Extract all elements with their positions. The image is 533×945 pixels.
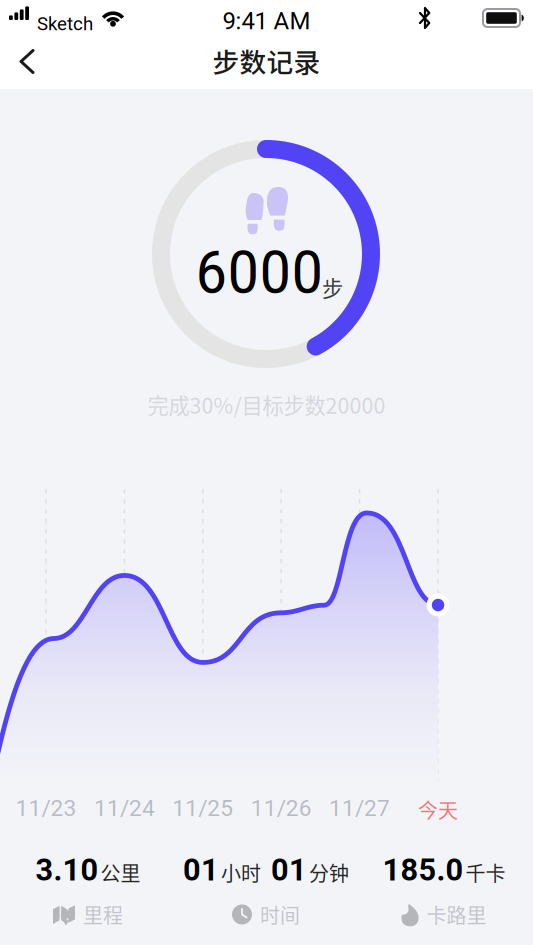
staticText: 11/25 <box>172 795 233 822</box>
staticText: 01 <box>183 852 219 888</box>
staticText: 11/24 <box>94 795 155 822</box>
staticText: 时间 <box>260 900 300 929</box>
staticText: 完成30%/目标步数20000 <box>147 389 385 420</box>
staticText: 9:41 AM <box>222 7 310 35</box>
staticText: 6000 <box>195 237 323 307</box>
staticText: 里程 <box>83 900 123 929</box>
staticText: 卡路里 <box>426 900 486 929</box>
staticText: 11/27 <box>329 795 390 822</box>
staticText: 11/23 <box>15 795 76 822</box>
staticText: 步数记录 <box>212 41 320 80</box>
staticText: 11/26 <box>251 795 312 822</box>
staticText: 步 <box>322 272 343 303</box>
staticText: 3.10 <box>35 852 98 888</box>
staticText: 分钟 <box>309 858 349 887</box>
staticText: Sketch <box>37 13 93 35</box>
staticText: 185.0 <box>382 852 463 888</box>
button[interactable]: Back <box>0 38 53 86</box>
staticText: 公里 <box>100 858 140 887</box>
staticText: 今天 <box>418 795 458 824</box>
staticText: 小时 <box>221 858 261 887</box>
staticText: 千卡 <box>465 858 505 887</box>
staticText: 01 <box>271 852 307 888</box>
